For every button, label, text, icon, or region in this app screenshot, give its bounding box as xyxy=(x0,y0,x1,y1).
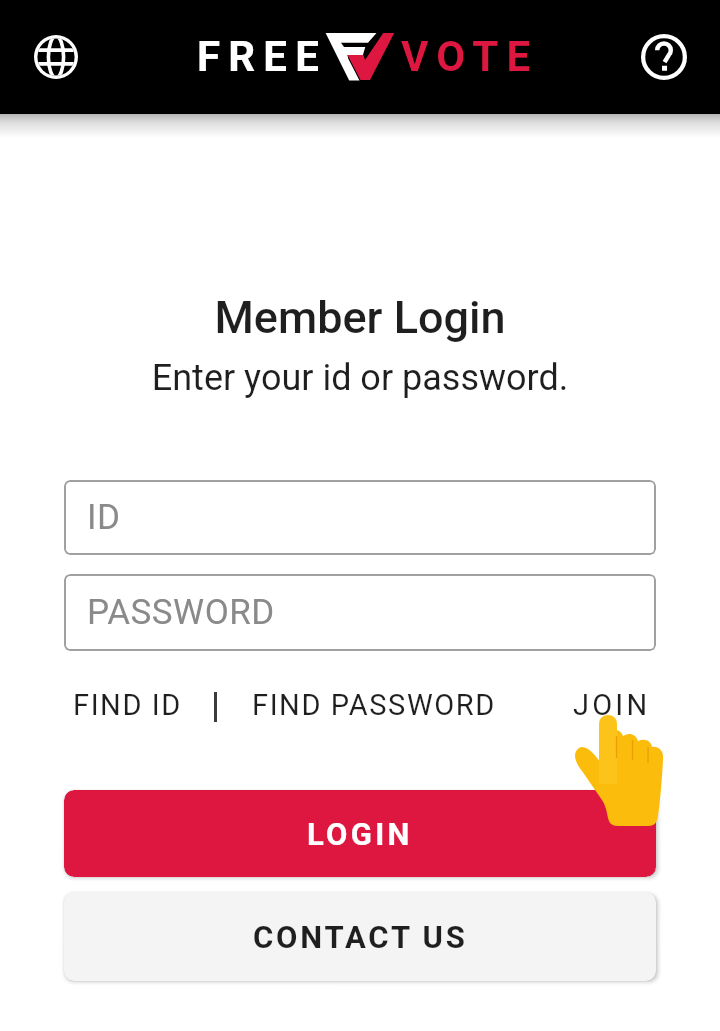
button[interactable]: JOIN xyxy=(573,688,651,722)
button[interactable]: FIND ID xyxy=(73,688,182,722)
button[interactable]: Help xyxy=(628,21,700,93)
staticText: PASSWORD xyxy=(87,592,275,633)
button[interactable]: Language xyxy=(20,21,92,93)
button[interactable]: ID xyxy=(64,480,656,555)
staticText: LOGIN xyxy=(307,816,413,852)
staticText: Member Login xyxy=(0,291,720,344)
staticText: CONTACT US xyxy=(253,919,468,955)
staticText: ID xyxy=(87,497,121,538)
button[interactable]: CONTACT US xyxy=(64,892,656,981)
staticText: FIND ID xyxy=(73,688,182,722)
staticText: JOIN xyxy=(573,688,651,722)
other: Pointer xyxy=(570,710,666,828)
staticText: FIND PASSWORD xyxy=(252,688,496,722)
staticText: VOTE xyxy=(401,32,539,81)
button[interactable]: FIND PASSWORD xyxy=(252,688,496,722)
staticText: FREE xyxy=(197,32,328,81)
button[interactable]: PASSWORD xyxy=(64,574,656,651)
staticText: Enter your id or password. xyxy=(0,357,720,399)
button[interactable]: LOGIN xyxy=(64,790,656,877)
